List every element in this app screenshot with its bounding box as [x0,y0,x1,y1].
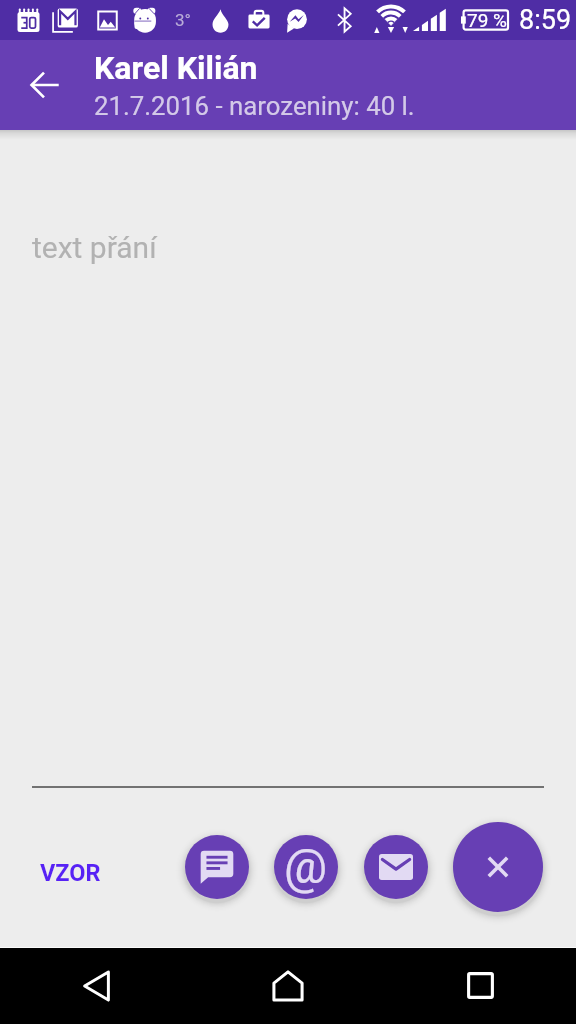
button[interactable]: Send SMS [185,835,249,899]
staticText: @ [284,838,328,894]
staticText: 79 % [467,9,507,31]
button[interactable]: Send email [364,835,428,899]
button[interactable]: VZOR [24,849,117,897]
button[interactable]: Back [0,947,192,1024]
staticText: 8:59 [519,4,572,36]
button[interactable]: Recent apps [384,947,576,1024]
button[interactable]: Back [19,59,71,111]
staticText: 21.7.2016 - narozeniny: 40 l. [94,91,415,121]
staticText: text přání [32,230,157,265]
staticText: 3° [175,10,191,30]
staticText: VZOR [40,859,101,887]
button[interactable]: Home [192,947,384,1024]
button[interactable]: Send via messaging app [274,835,338,899]
button[interactable]: Close [453,822,543,912]
staticText: Karel Kilián [94,49,258,87]
